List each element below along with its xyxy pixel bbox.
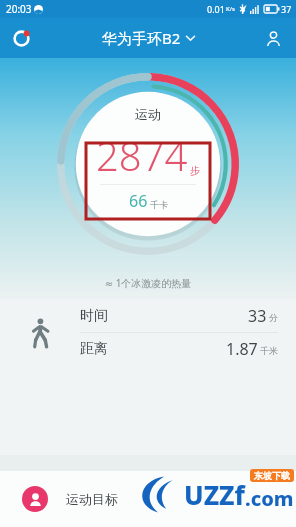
staticText: 运动 [135,106,161,122]
button[interactable]: 华为手环B2 [102,28,195,48]
staticText: 33 [248,305,267,327]
staticText: 步 [190,164,200,177]
staticText: 分 [269,312,278,323]
button[interactable]: Account [260,25,286,51]
button[interactable]: 距离 [80,333,278,365]
button[interactable]: 时间 [80,300,278,332]
staticText: 运动目标 [66,491,118,507]
button[interactable]: 运动目标 [0,471,296,527]
staticText: 时间 [80,307,108,325]
staticText: UZZf [184,477,245,512]
staticText: 66 [129,190,148,212]
staticText: 2874 [96,128,188,182]
staticText: 20:03 [6,2,32,16]
staticText: 37 [281,3,292,15]
other: Walking [29,318,51,348]
staticText: 0.01 [207,3,225,15]
staticText: K/s [226,5,235,13]
staticText: 距离 [80,340,108,358]
staticText: .com [245,485,294,512]
staticText: 1.87 [226,338,258,360]
staticText: 华为手环B2 [102,28,181,48]
staticText: 千米 [260,345,278,356]
staticText: 东坡下载 [254,470,290,481]
staticText: ≈ 1个冰激凌的热量 [0,276,296,290]
staticText: 千卡 [150,199,168,210]
button[interactable]: Device status [8,25,34,51]
